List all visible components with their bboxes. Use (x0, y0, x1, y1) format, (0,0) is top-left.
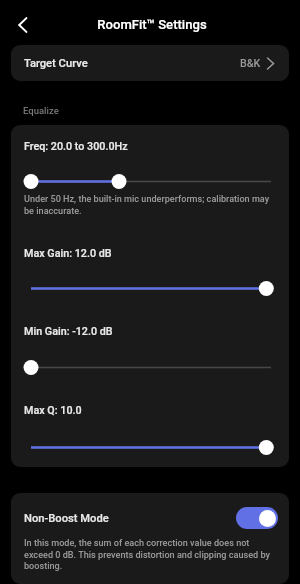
button[interactable]: Slider (24, 359, 271, 376)
staticText: Under 50 Hz, the built-in mic underperfo… (24, 194, 286, 216)
staticText: B&K (240, 57, 261, 70)
button[interactable]: Back (6, 8, 39, 41)
button[interactable]: Target Curve (11, 45, 289, 81)
button[interactable]: Slider (24, 439, 271, 456)
staticText: Max Q: 10.0 (24, 404, 82, 417)
staticText: Max Gain: 12.0 dB (24, 247, 112, 260)
staticText: In this mode, the sum of each correction… (24, 538, 286, 571)
staticText: Equalize (23, 105, 59, 116)
button[interactable]: Slider (24, 280, 271, 297)
button[interactable]: Non-Boost Mode (11, 493, 289, 543)
staticText: Freq: 20.0 to 300.0Hz (24, 140, 128, 153)
staticText: RoomFit™ Settings (2, 17, 300, 32)
staticText: Target Curve (24, 57, 88, 70)
button[interactable]: Slider (24, 173, 271, 190)
staticText: Min Gain: -12.0 dB (24, 325, 113, 338)
staticText: Non-Boost Mode (24, 512, 109, 525)
